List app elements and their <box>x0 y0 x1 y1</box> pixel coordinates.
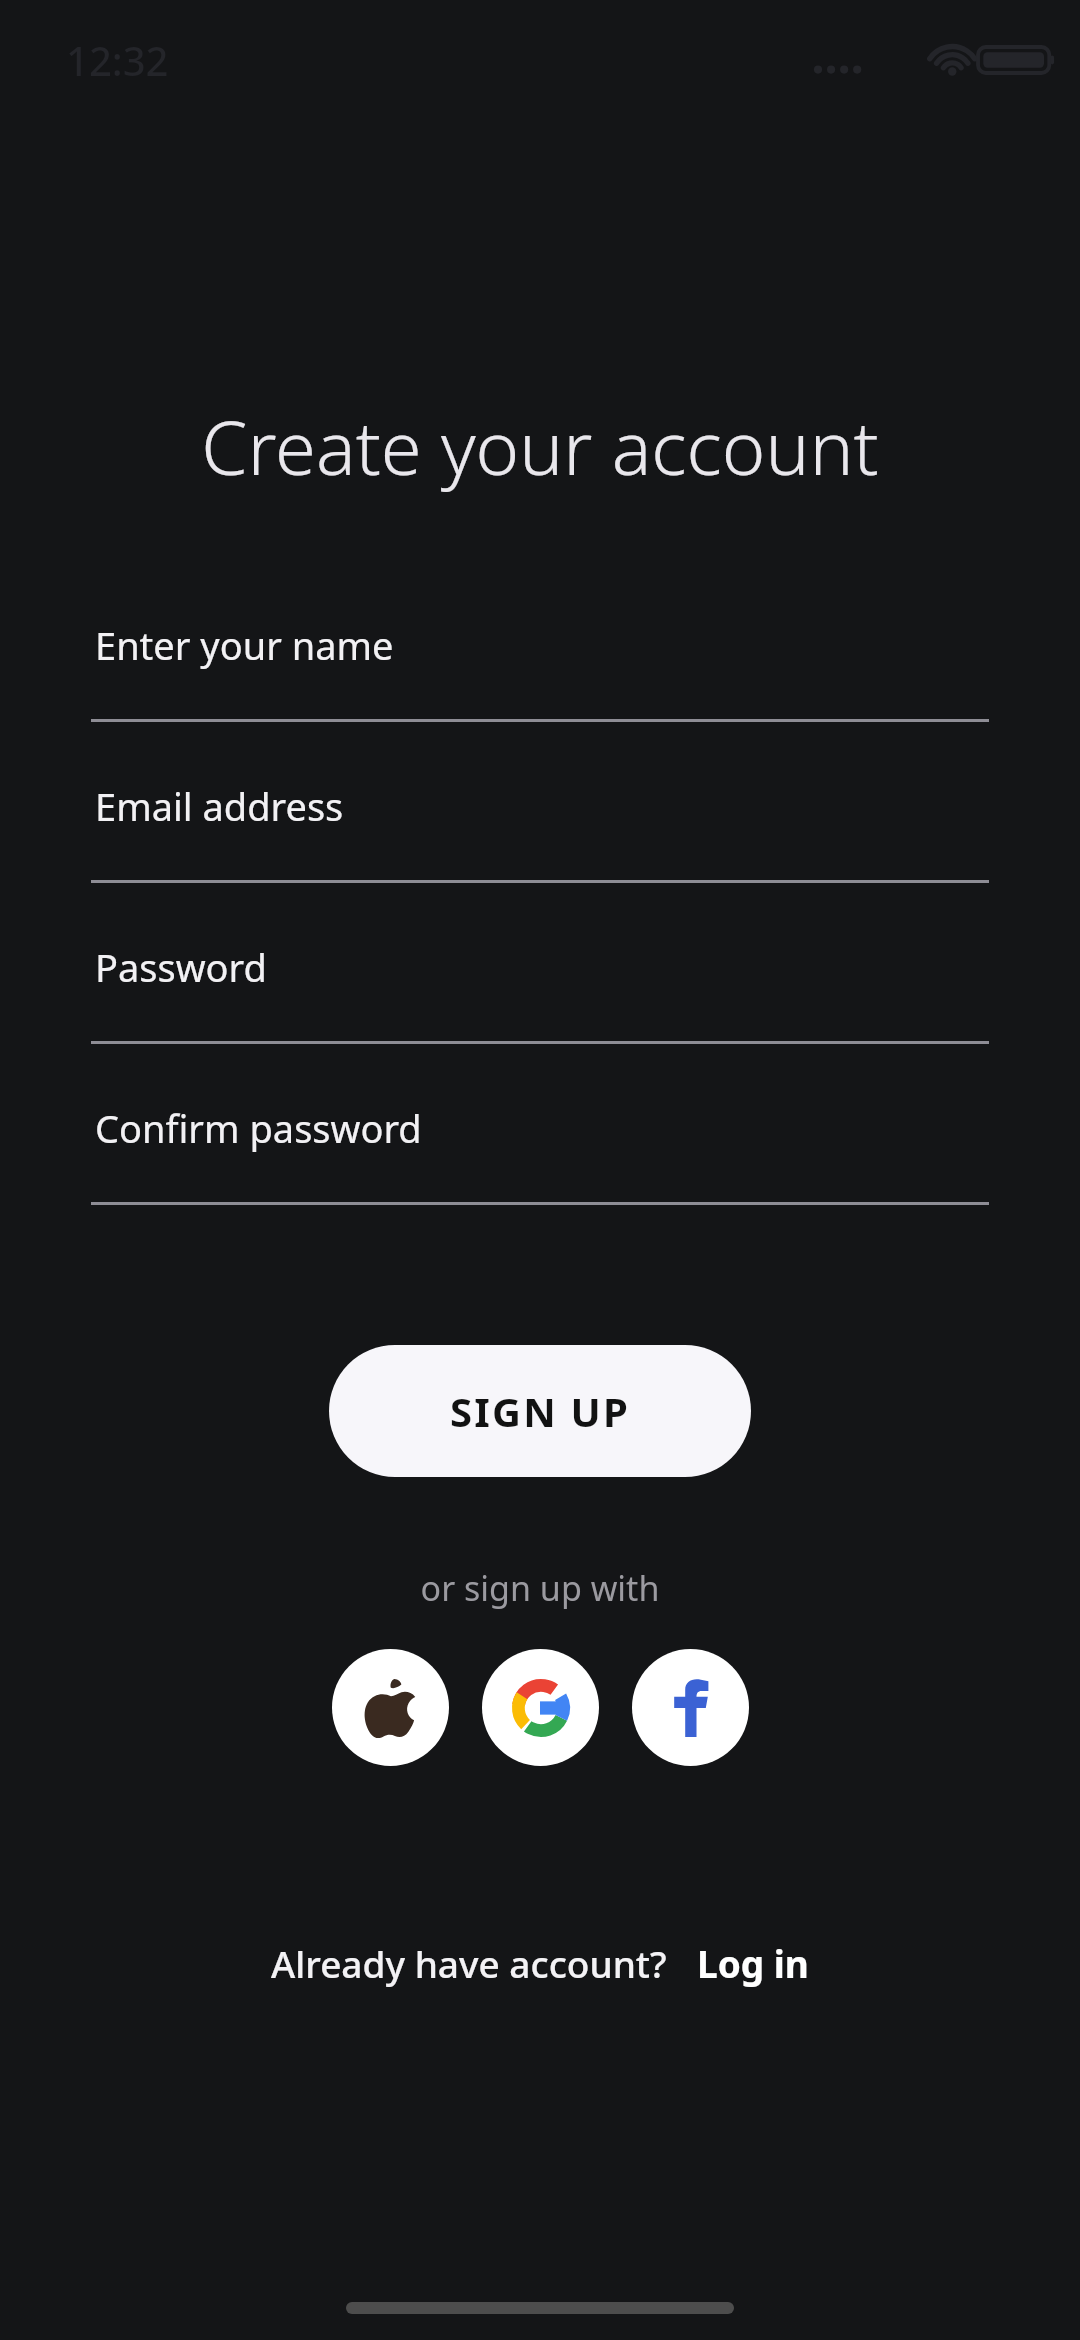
button[interactable]: Already have account? <box>271 1938 667 1988</box>
button[interactable]: Password <box>91 933 989 1044</box>
staticText: Enter your name <box>95 619 394 671</box>
button[interactable]: Sign up with Facebook <box>632 1649 749 1766</box>
button[interactable]: Log in <box>697 1938 809 1988</box>
button[interactable]: Confirm password <box>91 1094 989 1205</box>
button[interactable]: SIGN UP <box>329 1345 751 1477</box>
staticText: Password <box>95 941 267 993</box>
button[interactable]: Sign up with Google <box>482 1649 599 1766</box>
button[interactable]: Email address <box>91 772 989 883</box>
staticText: or sign up with <box>0 1565 1080 1611</box>
staticText: Create your account <box>0 396 1080 497</box>
button[interactable]: Enter your name <box>91 611 989 722</box>
staticText: Already have account? <box>271 1938 667 1988</box>
staticText: Log in <box>697 1938 809 1988</box>
staticText: SIGN UP <box>450 1384 630 1438</box>
staticText: 12:32 <box>66 33 169 87</box>
button[interactable]: Sign up with Apple <box>332 1649 449 1766</box>
staticText: Email address <box>95 780 344 832</box>
staticText: Confirm password <box>95 1102 422 1154</box>
